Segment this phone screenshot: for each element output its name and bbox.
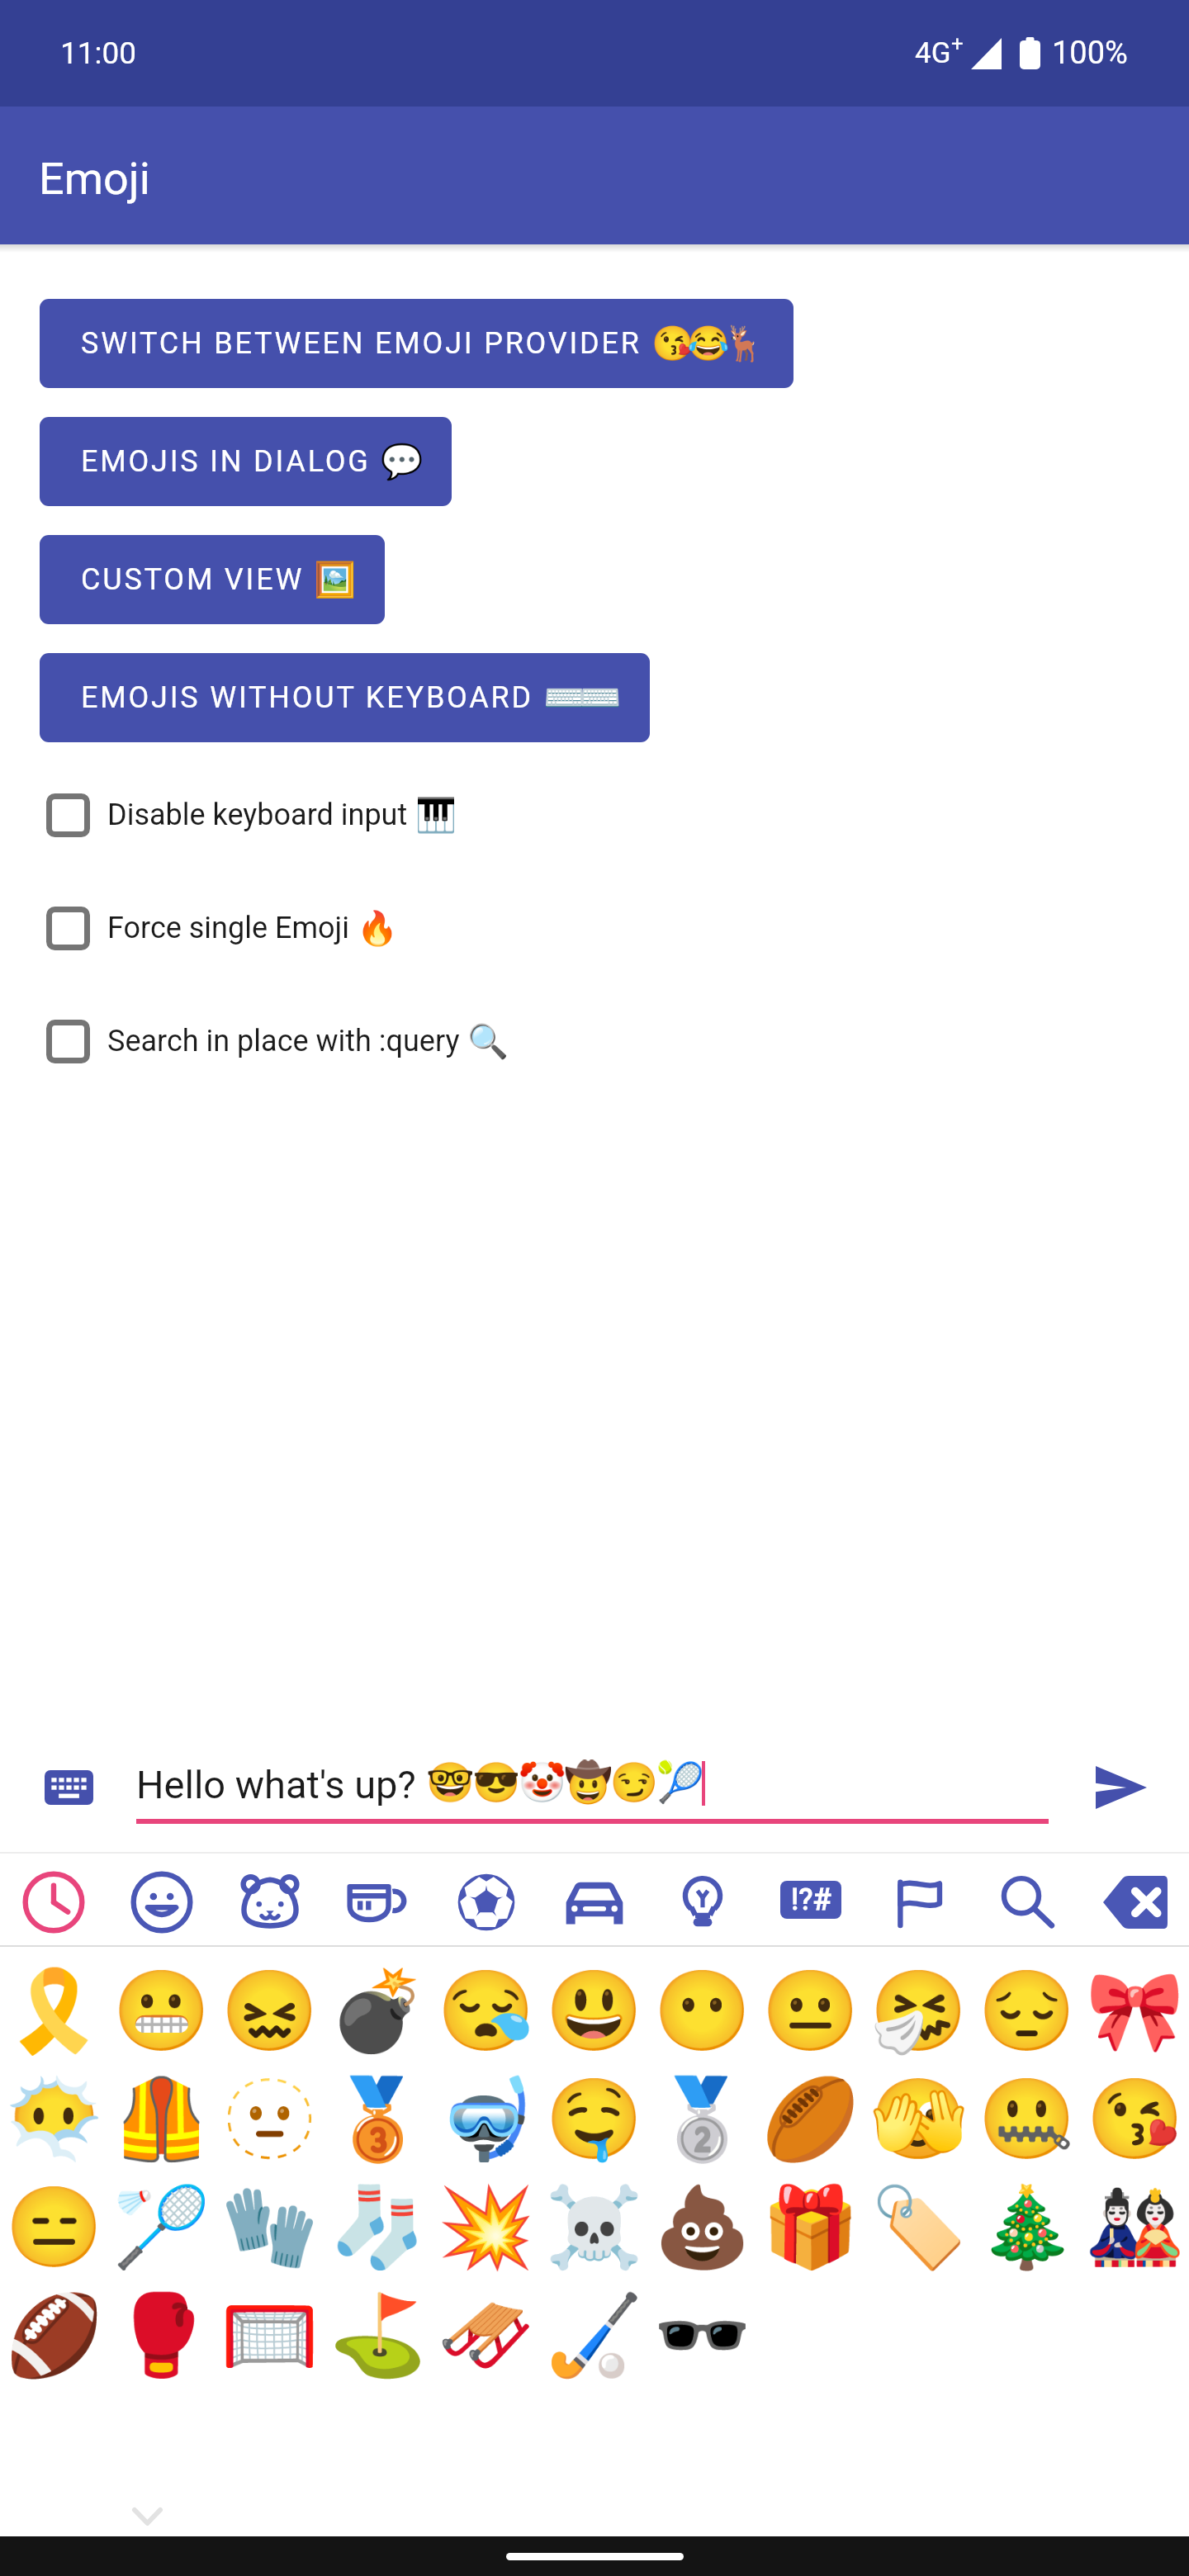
- button[interactable]: 🤿: [432, 2055, 540, 2163]
- staticText: 😶‍🌫️: [5, 2073, 103, 2166]
- staticText: 🔥: [357, 909, 398, 948]
- button[interactable]: 😶‍🌫️: [0, 2055, 107, 2163]
- button[interactable]: Objects: [648, 1854, 756, 1945]
- staticText: ☠️: [545, 2181, 643, 2274]
- button[interactable]: 🥉: [324, 2055, 432, 2163]
- button[interactable]: 🏷️: [865, 2163, 973, 2271]
- button[interactable]: CUSTOM VIEW: [40, 535, 385, 624]
- button[interactable]: 🤐: [973, 2055, 1081, 2163]
- button[interactable]: Send: [1096, 1766, 1147, 1809]
- button[interactable]: Symbols: [756, 1854, 865, 1945]
- button[interactable]: 🎎: [1081, 2163, 1189, 2271]
- staticText: +: [951, 31, 964, 56]
- staticText: 😑: [5, 2181, 103, 2274]
- staticText: 🏈: [5, 2290, 103, 2382]
- button[interactable]: 🫣: [865, 2055, 973, 2163]
- button[interactable]: 💩: [648, 2163, 756, 2271]
- button[interactable]: SWITCH BETWEEN EMOJI PROVIDER: [40, 299, 793, 388]
- staticText: 🤓😎🤡🤠😏🎾: [426, 1759, 702, 1805]
- button[interactable]: 😬: [107, 1947, 216, 2055]
- button[interactable]: Recent: [0, 1854, 107, 1945]
- staticText: Disable keyboard input: [107, 798, 415, 832]
- staticText: 😔: [978, 1965, 1076, 2057]
- button[interactable]: 🤤: [540, 2055, 648, 2163]
- button[interactable]: Search in place with :query: [0, 1012, 1189, 1070]
- staticText: 🫣: [869, 2073, 968, 2166]
- button[interactable]: Travel: [540, 1854, 648, 1945]
- button[interactable]: Keyboard: [45, 1770, 93, 1805]
- button[interactable]: 😐: [756, 1947, 865, 2055]
- staticText: 💩: [653, 2181, 751, 2274]
- staticText: 😬: [112, 1965, 211, 2057]
- button[interactable]: Flags: [865, 1854, 973, 1945]
- button[interactable]: 🕶️: [648, 2271, 756, 2379]
- staticText: 🥊: [112, 2290, 211, 2382]
- button[interactable]: 💣: [324, 1947, 432, 2055]
- button[interactable]: Emoji: [0, 107, 1189, 244]
- staticText: Emoji: [39, 153, 150, 205]
- button[interactable]: EMOJIS WITHOUT KEYBOARD: [40, 653, 650, 742]
- button[interactable]: 🛷: [432, 2271, 540, 2379]
- button[interactable]: 🏉: [756, 2055, 865, 2163]
- staticText: 🧤: [220, 2181, 319, 2274]
- button[interactable]: Search: [973, 1854, 1081, 1945]
- staticText: 4G: [915, 36, 951, 70]
- staticText: 💬: [381, 442, 417, 481]
- staticText: 🫥: [220, 2073, 319, 2166]
- button[interactable]: 🫥: [216, 2055, 324, 2163]
- button[interactable]: 😖: [216, 1947, 324, 2055]
- button[interactable]: 🥅: [216, 2271, 324, 2379]
- staticText: 🥅: [220, 2290, 319, 2382]
- staticText: 🥉: [329, 2073, 427, 2166]
- button[interactable]: 🎁: [756, 2163, 865, 2271]
- button[interactable]: 🏸: [107, 2163, 216, 2271]
- button[interactable]: Force single Emoji: [0, 899, 1189, 957]
- button[interactable]: Smileys: [107, 1854, 216, 1945]
- staticText: 🎗: [5, 1965, 103, 2057]
- button[interactable]: 🦺: [107, 2055, 216, 2163]
- staticText: 🏸: [112, 2181, 211, 2274]
- staticText: 😪: [437, 1965, 535, 2057]
- button[interactable]: Activity: [432, 1854, 540, 1945]
- button[interactable]: EMOJIS IN DIALOG: [40, 417, 452, 506]
- button[interactable]: 🥊: [107, 2271, 216, 2379]
- staticText: 🎄: [978, 2181, 1076, 2274]
- button[interactable]: 😑: [0, 2163, 107, 2271]
- button[interactable]: 🎗: [0, 1947, 107, 2055]
- staticText: 🤐: [978, 2073, 1076, 2166]
- staticText: 💥: [437, 2181, 535, 2274]
- button[interactable]: 🎄: [973, 2163, 1081, 2271]
- button[interactable]: 🧦: [324, 2163, 432, 2271]
- button[interactable]: 🏑: [540, 2271, 648, 2379]
- staticText: 🥈: [653, 2073, 751, 2166]
- button[interactable]: Animals: [216, 1854, 324, 1945]
- staticText: Force single Emoji: [107, 911, 357, 945]
- button[interactable]: Food and drink: [324, 1854, 432, 1945]
- button[interactable]: 🏈: [0, 2271, 107, 2379]
- button[interactable]: 🥈: [648, 2055, 756, 2163]
- button[interactable]: 💥: [432, 2163, 540, 2271]
- button[interactable]: 😪: [432, 1947, 540, 2055]
- button[interactable]: 😃: [540, 1947, 648, 2055]
- button[interactable]: Disable keyboard input: [0, 786, 1189, 844]
- button[interactable]: Backspace: [1081, 1854, 1189, 1945]
- staticText: 🖼: [314, 560, 350, 599]
- button[interactable]: 🤧: [865, 1947, 973, 2055]
- button[interactable]: ⛳: [324, 2271, 432, 2379]
- staticText: 🦺: [112, 2073, 211, 2166]
- staticText: EMOJIS IN DIALOG: [81, 444, 381, 479]
- button[interactable]: ☠️: [540, 2163, 648, 2271]
- staticText: 🎁: [761, 2181, 860, 2274]
- staticText: 🎹: [415, 796, 457, 835]
- button[interactable]: 😔: [973, 1947, 1081, 2055]
- button[interactable]: 😶: [648, 1947, 756, 2055]
- button[interactable]: 😘: [1081, 2055, 1189, 2163]
- button[interactable]: 🎀: [1081, 1947, 1189, 2055]
- staticText: 100%: [1052, 35, 1128, 72]
- button[interactable]: 🧤: [216, 2163, 324, 2271]
